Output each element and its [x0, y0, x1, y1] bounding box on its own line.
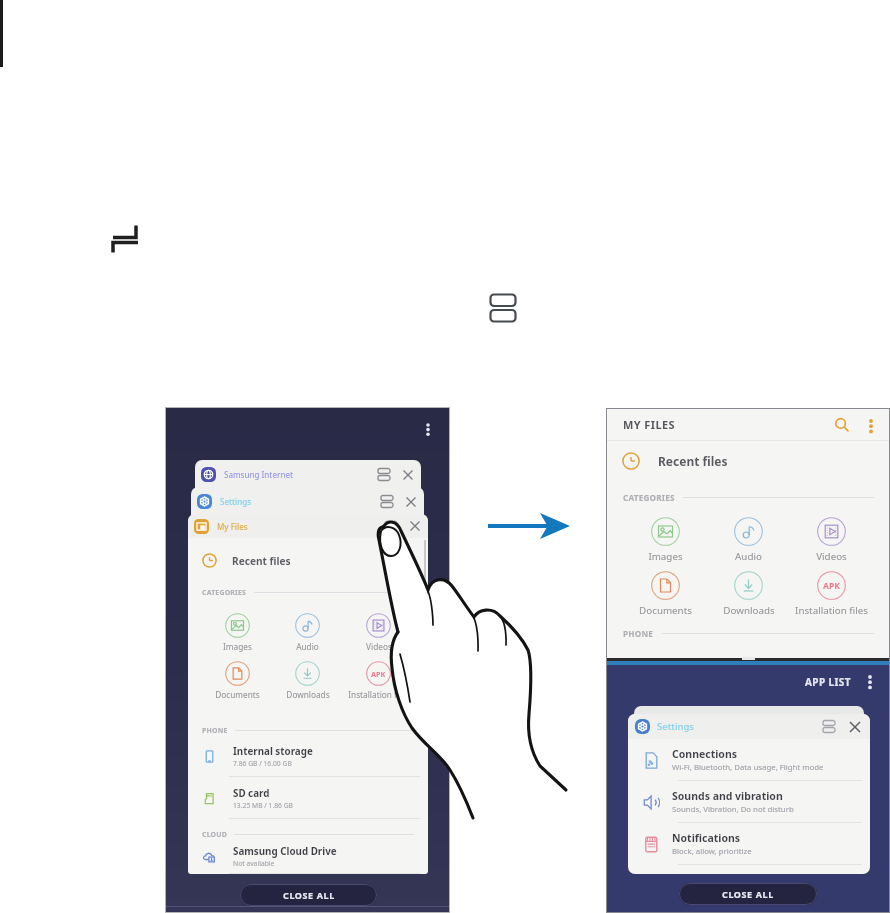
staticText: Audio: [735, 550, 762, 563]
button[interactable]: Downloads: [272, 661, 343, 700]
staticText: Downloads: [723, 604, 775, 617]
button[interactable]: Audio: [707, 517, 790, 563]
button[interactable]: Videos: [790, 517, 873, 563]
staticText: CLOUD: [202, 830, 227, 839]
button[interactable]: CLOSE ALL: [240, 884, 377, 906]
staticText: Settings: [220, 496, 252, 507]
button[interactable]: Close: [408, 519, 422, 533]
button[interactable]: Split screen: [384, 519, 398, 533]
staticText: Videos: [366, 641, 392, 652]
button[interactable]: Documents: [202, 661, 272, 700]
button[interactable]: Close: [401, 468, 415, 482]
staticText: APK: [371, 669, 386, 679]
staticText: Videos: [816, 550, 847, 563]
button[interactable]: Split screen: [380, 495, 394, 509]
staticText: APK: [823, 580, 840, 592]
button[interactable]: Connections: [628, 739, 870, 781]
button[interactable]: APK: [790, 571, 873, 617]
button[interactable]: Videos: [343, 613, 414, 652]
button[interactable]: SD card: [188, 777, 428, 819]
button[interactable]: Images: [202, 613, 272, 652]
button[interactable]: Split screen: [822, 720, 836, 734]
staticText: SD card: [233, 787, 270, 800]
staticText: Recent files: [658, 453, 728, 469]
staticText: Internal storage: [233, 745, 313, 758]
staticText: Sounds and vibration: [672, 789, 783, 803]
button[interactable]: Close: [847, 719, 863, 735]
staticText: PHONE: [202, 726, 228, 735]
button[interactable]: More options: [860, 415, 880, 435]
staticText: Documents: [215, 689, 260, 700]
staticText: CLOSE ALL: [283, 889, 335, 901]
button[interactable]: CLOSE ALL: [679, 883, 817, 905]
staticText: Images: [223, 641, 252, 652]
staticText: Settings: [657, 720, 694, 733]
button[interactable]: Samsung Internet: [195, 460, 421, 489]
staticText: CATEGORIES: [623, 492, 675, 503]
staticText: CATEGORIES: [202, 588, 247, 597]
button[interactable]: Switch apps: [111, 222, 142, 254]
button[interactable]: Internal storage: [188, 735, 428, 777]
button[interactable]: More options: [416, 418, 440, 442]
staticText: Samsung Internet: [224, 469, 294, 480]
staticText: Recent files: [232, 554, 291, 568]
button[interactable]: Audio: [272, 613, 343, 652]
button[interactable]: More options: [859, 671, 881, 693]
staticText: Images: [648, 550, 683, 563]
button[interactable]: Search: [832, 415, 852, 435]
staticText: Block, allow, prioritize: [672, 846, 752, 857]
button[interactable]: Recent files: [606, 441, 890, 481]
staticText: Downloads: [286, 689, 330, 700]
button[interactable]: Recent files: [188, 538, 428, 583]
button[interactable]: Split screen: [377, 468, 391, 482]
staticText: CLOSE ALL: [722, 888, 774, 900]
button[interactable]: Split screen view: [489, 293, 517, 323]
staticText: MY FILES: [623, 417, 676, 432]
button[interactable]: Documents: [623, 571, 707, 617]
button[interactable]: Close: [404, 495, 418, 509]
button[interactable]: Notifications: [628, 823, 870, 865]
staticText: Connections: [672, 747, 737, 761]
staticText: Wi-Fi, Bluetooth, Data usage, Flight mod…: [672, 762, 824, 773]
staticText: PHONE: [623, 628, 654, 639]
button[interactable]: Downloads: [707, 571, 790, 617]
staticText: Not available: [233, 859, 275, 868]
staticText: Samsung Cloud Drive: [233, 845, 337, 858]
staticText: My Files: [217, 521, 248, 532]
staticText: APP LIST: [805, 675, 851, 689]
staticText: Documents: [639, 604, 692, 617]
staticText: 7.86 GB / 16.00 GB: [233, 759, 292, 768]
button[interactable]: Settings: [191, 487, 424, 516]
button[interactable]: Images: [623, 517, 707, 563]
staticText: Installation files: [795, 604, 868, 617]
button[interactable]: APK: [343, 661, 414, 700]
staticText: Sounds, Vibration, Do not disturb: [672, 804, 794, 815]
staticText: 13.25 MB / 1.86 GB: [233, 801, 293, 810]
button[interactable]: Sounds and vibration: [628, 781, 870, 823]
staticText: Audio: [296, 641, 319, 652]
staticText: Notifications: [672, 831, 741, 845]
button[interactable]: Samsung Cloud Drive: [188, 839, 428, 874]
staticText: Installation files: [348, 689, 410, 700]
